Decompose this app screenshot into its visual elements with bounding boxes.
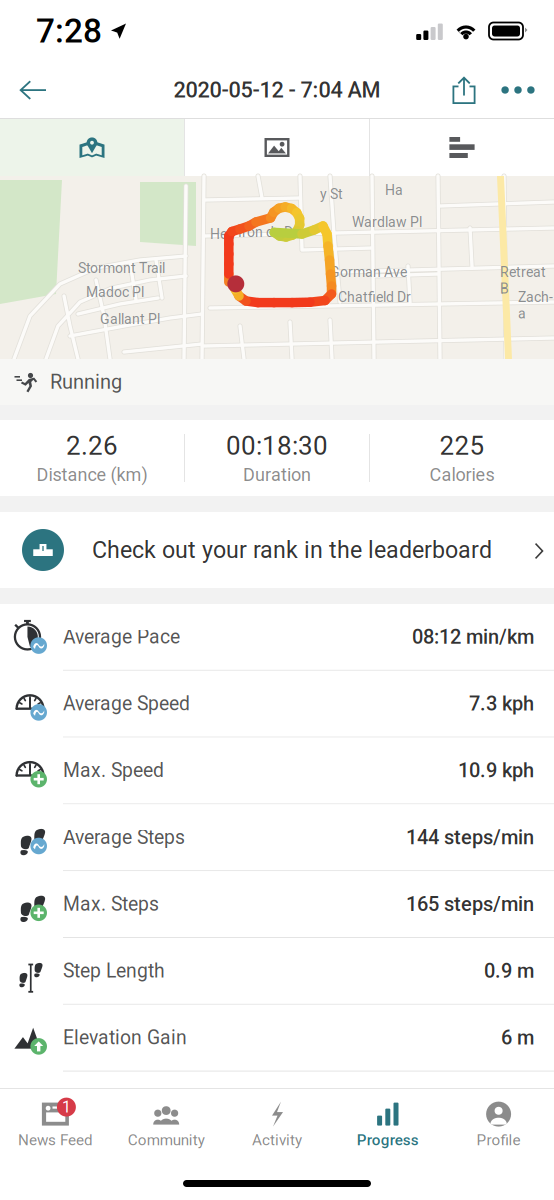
staticText: Chatfield Dr [338,289,411,305]
button[interactable]: Step Length [0,938,554,1005]
button[interactable]: Average Steps [0,804,554,871]
staticText: Calories [429,464,494,485]
staticText: Average Speed [63,692,190,715]
staticText: Stormont Trail [78,260,165,276]
staticText: Zacha [518,289,553,322]
button[interactable]: Elevation Gain [0,1005,554,1072]
staticText: Ha [385,182,403,198]
staticText: 2020-05-12 - 7:04 AM [173,77,380,103]
staticText: Retreat B [500,264,546,297]
staticText: 00:18:30 [226,431,328,461]
button[interactable]: 1 [0,1097,111,1153]
staticText: Distance (km) [36,464,147,485]
staticText: Average Steps [63,826,185,849]
staticText: Madoc Pl [86,284,144,300]
button[interactable]: Charts [370,119,554,176]
button[interactable]: Max. Steps [0,871,554,938]
button[interactable]: Back [3,62,63,118]
staticText: y St [320,186,343,202]
staticText: 10.9 kph [458,759,534,782]
staticText: Duration [243,464,311,485]
staticText: Running [50,370,122,394]
button[interactable]: Map [0,119,184,176]
staticText: 0.9 m [484,959,534,983]
staticText: Average Pace [63,626,180,648]
staticText: Check out your rank in the leaderboard [92,536,492,564]
staticText: Profile [477,1131,521,1149]
button[interactable]: More options [490,71,546,109]
staticText: News Feed [18,1131,93,1149]
button[interactable]: Average Pace [0,604,554,671]
staticText: Gallant Pl [100,311,160,327]
button[interactable]: Activity [222,1097,332,1153]
button[interactable]: Share [438,62,490,118]
staticText: Step Length [63,960,165,982]
staticText: Elevation Gain [63,1026,187,1049]
staticText: 6 m [501,1026,534,1049]
button[interactable]: Community [111,1097,222,1153]
staticText: Max. Speed [63,759,164,782]
staticText: Max. Steps [63,893,159,915]
staticText: Activity [252,1131,302,1149]
button[interactable]: Photos [185,119,369,176]
staticText: Community [128,1131,205,1149]
staticText: 144 steps/min [406,826,534,849]
button[interactable]: Progress [332,1097,443,1153]
staticText: Wardlaw Pl [352,214,422,230]
staticText: Hea [210,226,235,242]
staticText: 08:12 min/km [412,625,534,649]
staticText: 2.26 [66,431,118,461]
staticText: 165 steps/min [406,892,534,916]
button[interactable]: Average Speed [0,671,554,738]
button[interactable]: Profile [443,1097,554,1153]
button[interactable]: Check out your rank in the leaderboard [0,512,554,588]
staticText: 7.3 kph [469,692,534,715]
staticText: 225 [439,431,484,461]
staticText: Gorman Ave [330,264,407,280]
staticText: 1 [62,1098,71,1116]
staticText: Progress [357,1131,419,1149]
button[interactable]: Max. Speed [0,738,554,804]
staticText: 7:28 [36,11,102,51]
staticText: Iron de Dr [238,224,298,240]
